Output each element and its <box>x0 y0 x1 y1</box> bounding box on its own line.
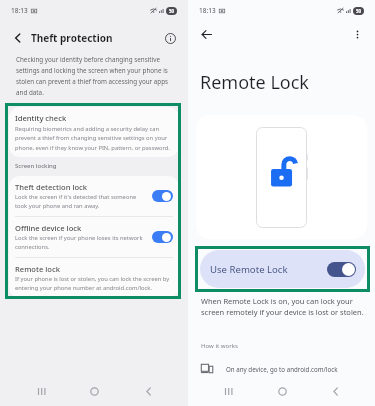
staticText: Remote Lock <box>200 70 309 95</box>
button[interactable]: Remote lock <box>9 258 179 298</box>
staticText: 50 <box>169 8 175 14</box>
staticText: Remote lock <box>15 264 60 274</box>
button[interactable]: Identity check <box>9 107 179 157</box>
staticText: If your phone is lost or stolen, you can… <box>15 275 173 292</box>
button[interactable]: Use Remote Lock <box>200 250 365 288</box>
staticText: Screen locking <box>15 162 57 170</box>
button[interactable]: Home <box>81 378 107 404</box>
staticText: 50 <box>356 8 362 14</box>
staticText: Theft protection <box>31 31 113 45</box>
staticText: Use Remote Lock <box>210 263 288 276</box>
button[interactable]: Theft detection lock <box>9 176 179 216</box>
staticText: How it works <box>201 341 238 349</box>
button[interactable]: More options <box>347 24 367 44</box>
button[interactable]: Back <box>9 29 27 47</box>
button[interactable]: Back <box>322 378 348 404</box>
staticText: Identity check <box>15 113 67 123</box>
other: Use Remote Lock toggle <box>327 262 356 277</box>
button[interactable]: Information <box>161 29 179 47</box>
button[interactable]: Recent apps <box>28 378 54 404</box>
staticText: Requiring biometrics and adding a securi… <box>15 125 173 152</box>
staticText: Lock the screen if it's detected that so… <box>15 193 147 210</box>
staticText: When Remote Lock is on, you can lock you… <box>201 296 367 317</box>
button[interactable]: Toggle on <box>152 190 173 202</box>
button[interactable]: Recent apps <box>215 378 241 404</box>
button[interactable]: Back <box>135 378 161 404</box>
button[interactable]: Toggle on <box>152 231 173 243</box>
staticText: Lock the screen if your phone loses its … <box>15 234 147 251</box>
button[interactable]: Home <box>269 378 295 404</box>
staticText: 18:13 <box>11 6 28 15</box>
button[interactable]: Back <box>196 24 216 44</box>
staticText: On any device, go to android.com/lock <box>226 365 338 373</box>
staticText: Checking your identity before changing s… <box>16 55 173 96</box>
button[interactable]: Offline device lock <box>9 217 179 257</box>
staticText: Theft detection lock <box>15 182 88 192</box>
staticText: 18:13 <box>199 6 216 15</box>
staticText: Offline device lock <box>15 223 82 233</box>
